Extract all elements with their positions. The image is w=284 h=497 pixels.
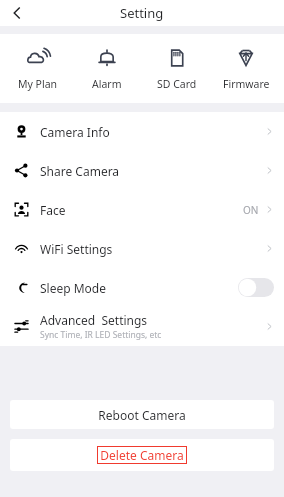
staticText: ON <box>243 203 259 217</box>
button[interactable]: WiFi Settings <box>0 229 284 268</box>
staticText: Share Camera <box>40 163 120 179</box>
staticText: Advanced Settings <box>40 312 148 328</box>
button[interactable]: My Plan <box>7 47 69 91</box>
button[interactable]: Reboot Camera <box>10 400 274 429</box>
staticText: Camera Info <box>40 124 110 140</box>
button[interactable]: Sleep Mode <box>0 268 284 307</box>
button[interactable]: SD Card <box>146 47 208 91</box>
button[interactable]: Face <box>0 190 284 229</box>
staticText: Reboot Camera <box>98 407 186 423</box>
staticText: My Plan <box>18 77 58 91</box>
button[interactable]: Alarm <box>76 47 138 91</box>
staticText: Delete Camera <box>100 447 184 463</box>
staticText: Setting <box>120 4 164 22</box>
button[interactable]: Camera Info <box>0 112 284 151</box>
staticText: Face <box>40 202 66 218</box>
staticText: Alarm <box>92 77 122 91</box>
button[interactable]: Share Camera <box>0 151 284 190</box>
button[interactable]: Firmware <box>215 47 277 91</box>
staticText: Sleep Mode <box>40 280 107 296</box>
staticText: WiFi Settings <box>40 241 113 257</box>
button[interactable]: Delete Camera <box>10 439 274 471</box>
staticText: Sync Time, IR LED Settings, etc <box>40 329 162 341</box>
staticText: SD Card <box>157 77 197 91</box>
button[interactable]: Advanced Settings <box>0 307 284 346</box>
staticText: Firmware <box>223 77 270 91</box>
button[interactable]: Sleep Mode toggle <box>238 278 274 297</box>
button[interactable]: Back <box>0 0 34 26</box>
